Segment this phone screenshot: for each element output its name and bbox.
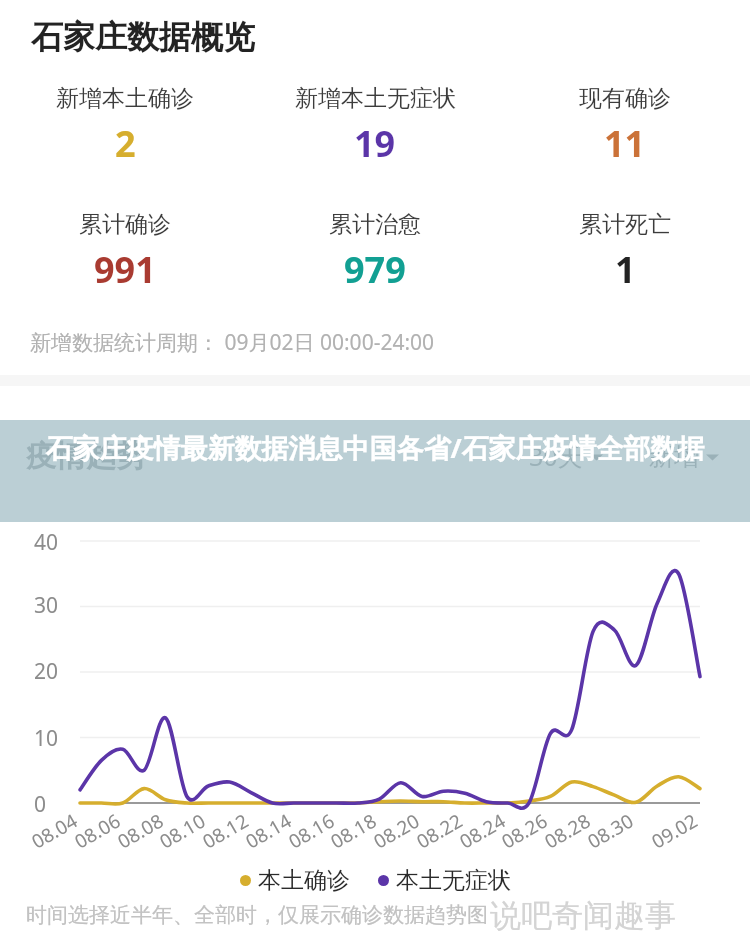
staticText: 2 xyxy=(115,119,136,168)
button[interactable]: 累计死亡 xyxy=(500,210,750,294)
staticText: 30 xyxy=(34,591,59,620)
button[interactable]: 累计治愈 xyxy=(250,210,500,294)
staticText: 0 xyxy=(34,790,47,819)
staticText: 时间选择近半年、全部时，仅展示确诊数据趋势图 xyxy=(26,902,488,928)
staticText: 08.10 xyxy=(155,807,210,854)
staticText: 08.14 xyxy=(241,807,296,854)
staticText: 30天 xyxy=(529,439,583,473)
staticText: 本土无症状 xyxy=(396,866,511,895)
staticText: 疫情趋势 xyxy=(26,437,146,475)
button[interactable]: 新增 xyxy=(644,436,724,477)
staticText: 累计治愈 xyxy=(329,210,421,239)
staticText: 08.06 xyxy=(70,807,125,854)
staticText: 08.04 xyxy=(27,807,82,854)
button[interactable]: 本土确诊 xyxy=(234,862,356,899)
staticText: 石家庄数据概览 xyxy=(31,17,255,57)
button[interactable]: 累计确诊 xyxy=(0,210,250,294)
staticText: 08.30 xyxy=(583,807,638,854)
staticText: 991 xyxy=(94,245,156,294)
staticText: 累计死亡 xyxy=(579,210,671,239)
staticText: 08.24 xyxy=(455,807,510,854)
staticText: 40 xyxy=(34,528,59,557)
staticText: 本土确诊 xyxy=(258,866,350,895)
staticText: 20 xyxy=(34,657,59,686)
staticText: 08.16 xyxy=(284,807,339,854)
staticText: 08.26 xyxy=(497,807,552,854)
button[interactable]: 新增本土无症状 xyxy=(250,84,500,168)
button[interactable]: 现有确诊 xyxy=(500,84,750,168)
staticText: 现有确诊 xyxy=(579,84,671,113)
staticText: 新增本土无症状 xyxy=(295,84,456,113)
staticText: 新增数据统计周期： 09月02日 00:00-24:00 xyxy=(30,328,435,357)
staticText: 19 xyxy=(354,119,396,168)
staticText: 1 xyxy=(615,245,636,294)
button[interactable]: 新增本土确诊 xyxy=(0,84,250,168)
staticText: 新增本土确诊 xyxy=(56,84,194,113)
staticText: 08.12 xyxy=(198,807,253,854)
button[interactable]: 本土无症状 xyxy=(372,862,517,899)
button[interactable]: 30天 xyxy=(524,434,608,478)
staticText: 08.08 xyxy=(113,807,168,854)
staticText: 979 xyxy=(344,245,406,294)
staticText: 09.02 xyxy=(647,807,702,854)
staticText: 说吧奇闻趣事 xyxy=(490,896,676,935)
staticText: 11 xyxy=(604,119,646,168)
staticText: 石家庄疫情最新数据消息中国各省/石家庄疫情全部数据 xyxy=(36,429,714,466)
staticText: 08.28 xyxy=(540,807,595,854)
staticText: 08.20 xyxy=(369,807,424,854)
staticText: 10 xyxy=(34,724,59,753)
staticText: 新增 xyxy=(649,441,699,472)
staticText: 累计确诊 xyxy=(79,210,171,239)
staticText: 08.18 xyxy=(326,807,381,854)
staticText: 08.22 xyxy=(412,807,467,854)
